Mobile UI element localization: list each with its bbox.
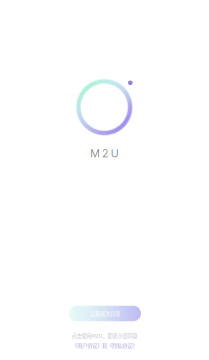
staticText: 点击使用M2U，即表示您同意 — [71, 332, 137, 339]
staticText: 《用户协议》和《隐私协议》 — [72, 341, 137, 349]
staticText: 2 — [102, 147, 109, 160]
staticText: M — [90, 147, 100, 160]
staticText: U — [111, 147, 119, 160]
button[interactable]: 让美成为日常 — [69, 306, 141, 321]
staticText: 让美成为日常 — [90, 310, 120, 317]
